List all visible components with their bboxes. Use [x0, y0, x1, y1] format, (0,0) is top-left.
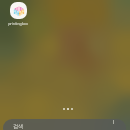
button[interactable]: printingbox — [5, 2, 31, 26]
staticText: 검색 — [13, 123, 23, 129]
staticText: printingbox — [5, 21, 31, 26]
button[interactable]: 검색 — [3, 119, 126, 130]
